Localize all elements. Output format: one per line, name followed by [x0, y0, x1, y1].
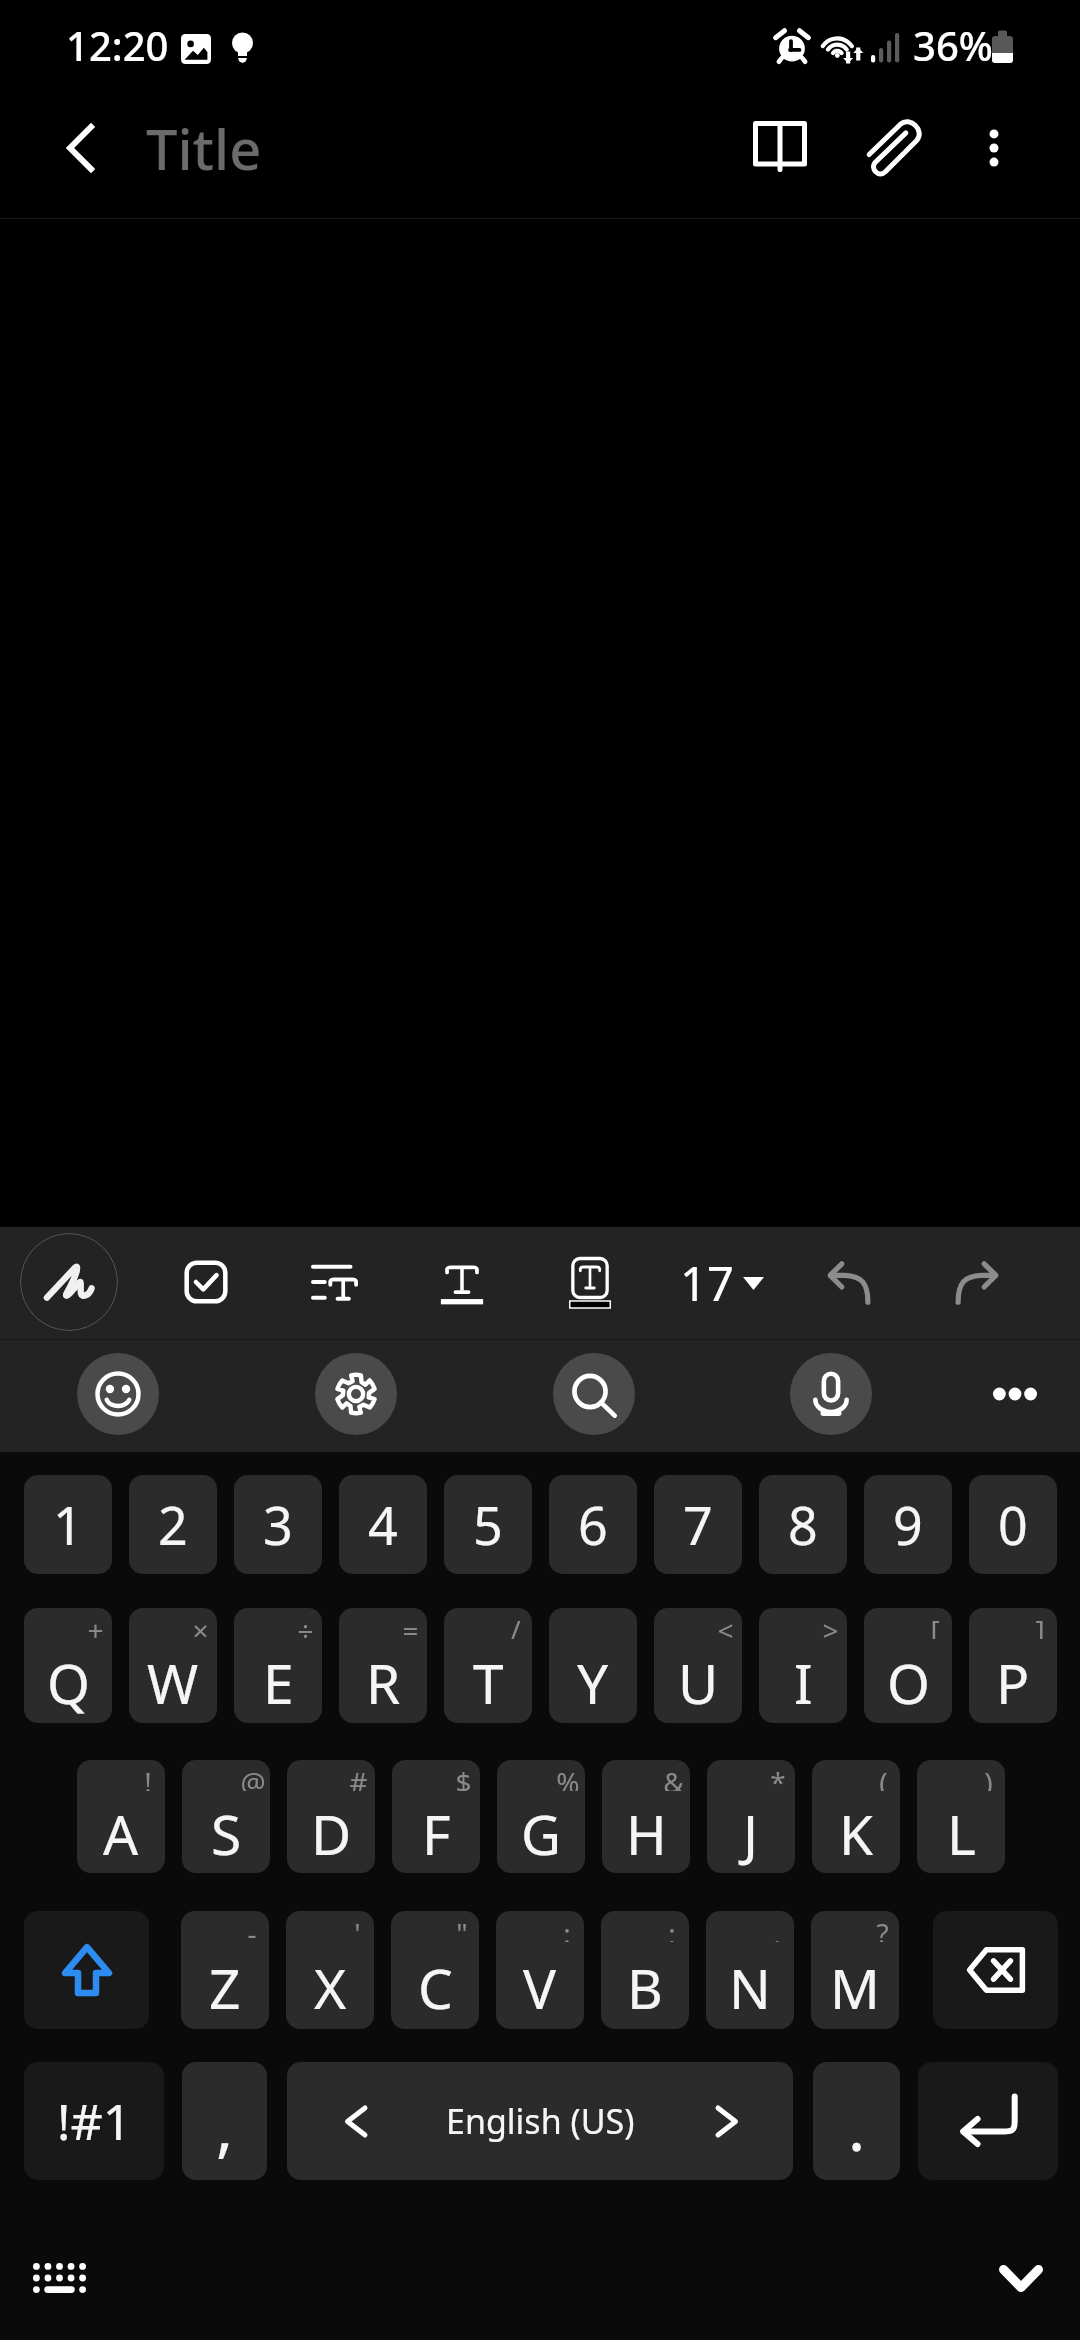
- button[interactable]: 8: [759, 1475, 847, 1574]
- button[interactable]: Enter: [918, 2062, 1058, 2180]
- button[interactable]: More options: [946, 100, 1042, 196]
- staticText: C: [418, 1950, 453, 2025]
- button[interactable]: 5: [444, 1475, 532, 1574]
- staticText: ,: [773, 1914, 781, 1942]
- staticText: 7: [683, 1489, 713, 1560]
- button[interactable]: Q: [24, 1608, 112, 1723]
- staticText: ?: [876, 1914, 889, 1942]
- staticText: S: [211, 1796, 242, 1871]
- button[interactable]: Back: [34, 100, 130, 196]
- button[interactable]: G: [497, 1760, 585, 1873]
- button[interactable]: Attach: [846, 100, 942, 196]
- staticText: D: [311, 1796, 352, 1871]
- staticText: G: [521, 1796, 562, 1871]
- button[interactable]: 0: [969, 1475, 1057, 1574]
- button[interactable]: 17: [680, 1241, 764, 1325]
- button[interactable]: W: [129, 1608, 217, 1723]
- button[interactable]: J: [707, 1760, 795, 1873]
- button[interactable]: More: [969, 1348, 1061, 1440]
- button[interactable]: Settings: [315, 1353, 397, 1435]
- staticText: B: [627, 1950, 663, 2025]
- button[interactable]: E: [234, 1608, 322, 1723]
- button[interactable]: K: [812, 1760, 900, 1873]
- staticText: ;: [668, 1914, 676, 1942]
- button[interactable]: Backspace: [933, 1911, 1058, 2029]
- staticText: %: [556, 1763, 580, 1791]
- button[interactable]: T: [444, 1608, 532, 1723]
- staticText: V: [523, 1950, 557, 2025]
- staticText: 3: [263, 1489, 293, 1560]
- staticText: 0: [998, 1489, 1028, 1560]
- staticText: 8: [788, 1489, 818, 1560]
- button[interactable]: 1: [24, 1475, 112, 1574]
- button[interactable]: .: [813, 2062, 900, 2180]
- staticText: (: [879, 1763, 888, 1791]
- staticText: 5: [473, 1489, 503, 1560]
- button[interactable]: V: [496, 1911, 584, 2029]
- button[interactable]: Reading mode: [732, 100, 828, 196]
- button[interactable]: H: [602, 1760, 690, 1873]
- button[interactable]: X: [286, 1911, 374, 2029]
- button[interactable]: 4: [339, 1475, 427, 1574]
- button[interactable]: R: [339, 1608, 427, 1723]
- button[interactable]: Hide keyboard: [973, 2233, 1069, 2323]
- button[interactable]: 2: [129, 1475, 217, 1574]
- staticText: P: [996, 1645, 1030, 1720]
- button[interactable]: Handwriting: [20, 1233, 118, 1331]
- button[interactable]: Redo: [929, 1235, 1025, 1331]
- button[interactable]: Keyboard layout: [11, 2233, 107, 2323]
- staticText: &: [663, 1763, 684, 1791]
- button[interactable]: U: [654, 1608, 742, 1723]
- button[interactable]: Shift: [24, 1911, 149, 2029]
- staticText: U: [678, 1645, 719, 1720]
- button[interactable]: 3: [234, 1475, 322, 1574]
- button[interactable]: F: [392, 1760, 480, 1873]
- button[interactable]: Emoji: [77, 1353, 159, 1435]
- button[interactable]: L: [917, 1760, 1005, 1873]
- button[interactable]: A: [77, 1760, 165, 1873]
- staticText: W: [147, 1645, 199, 1720]
- button[interactable]: P: [969, 1608, 1057, 1723]
- button[interactable]: C: [391, 1911, 479, 2029]
- staticText: $: [455, 1763, 472, 1791]
- button[interactable]: Z: [181, 1911, 269, 2029]
- button[interactable]: 7: [654, 1475, 742, 1574]
- staticText: 1: [53, 1489, 83, 1560]
- staticText: ÷: [297, 1611, 314, 1639]
- staticText: O: [887, 1645, 930, 1720]
- button[interactable]: I: [759, 1608, 847, 1723]
- button[interactable]: Undo: [801, 1235, 897, 1331]
- button[interactable]: Text box: [542, 1234, 638, 1330]
- button[interactable]: Paragraph: [286, 1234, 382, 1330]
- button[interactable]: Text style: [414, 1237, 510, 1333]
- staticText: I: [794, 1645, 813, 1720]
- button[interactable]: 6: [549, 1475, 637, 1574]
- staticText: A: [103, 1796, 139, 1871]
- button[interactable]: Search: [553, 1353, 635, 1435]
- staticText: 9: [893, 1489, 923, 1560]
- button[interactable]: O: [864, 1608, 952, 1723]
- button[interactable]: 9: [864, 1475, 952, 1574]
- button[interactable]: Checklist: [158, 1234, 254, 1330]
- button[interactable]: Y: [549, 1608, 637, 1723]
- staticText: ]: [1035, 1611, 1045, 1639]
- staticText: R: [366, 1645, 401, 1720]
- button[interactable]: N: [706, 1911, 794, 2029]
- button[interactable]: !#1: [24, 2062, 164, 2180]
- button[interactable]: B: [601, 1911, 689, 2029]
- staticText: 4: [368, 1489, 398, 1560]
- staticText: Q: [47, 1645, 90, 1720]
- staticText: 12:20: [66, 18, 169, 72]
- staticText: F: [422, 1796, 451, 1871]
- button[interactable]: D: [287, 1760, 375, 1873]
- button[interactable]: S: [182, 1760, 270, 1873]
- staticText: *: [770, 1763, 786, 1791]
- staticText: .: [848, 2083, 866, 2170]
- button[interactable]: Voice input: [790, 1353, 872, 1435]
- button[interactable]: M: [811, 1911, 899, 2029]
- button[interactable]: ,: [182, 2062, 267, 2180]
- button[interactable]: English (US): [287, 2062, 793, 2180]
- staticText: Y: [577, 1645, 609, 1720]
- staticText: T: [473, 1645, 504, 1720]
